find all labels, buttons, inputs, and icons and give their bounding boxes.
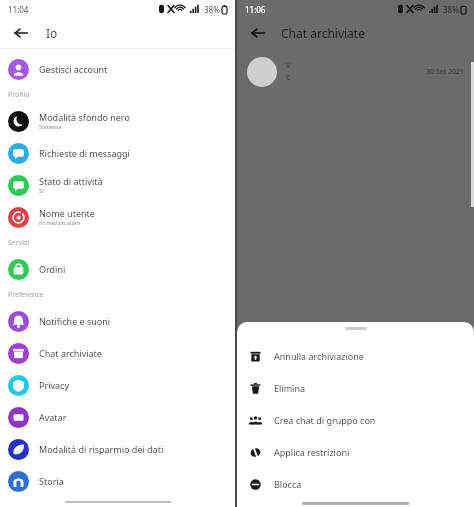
button[interactable]: Elimina — [237, 372, 474, 404]
staticText: 38% — [204, 4, 220, 15]
staticText: Io — [46, 25, 58, 41]
staticText: Stato di attività — [39, 175, 103, 187]
button[interactable]: Ordini — [0, 253, 235, 285]
staticText: Modalità di risparmio dei dati — [39, 443, 164, 455]
button[interactable]: Gestisci account — [0, 53, 235, 85]
staticText: Chat archiviate — [39, 347, 102, 359]
staticText: 30 Set 2021 — [426, 67, 464, 77]
staticText: Modalità sfondo nero — [39, 111, 130, 123]
staticText: V — [286, 61, 291, 71]
button[interactable]: Annulla archiviazione — [237, 340, 474, 372]
button[interactable]: Modalità di risparmio dei dati — [0, 433, 235, 465]
button[interactable]: Avatar — [0, 401, 235, 433]
button[interactable]: Indietro — [247, 22, 269, 44]
staticText: Ordini — [39, 263, 66, 275]
button[interactable]: Richieste di messaggi — [0, 137, 235, 169]
button[interactable]: Chat archiviate — [0, 337, 235, 369]
staticText: Sistema — [39, 123, 62, 131]
button[interactable]: Privacy — [0, 369, 235, 401]
staticText: Nome utente — [39, 207, 95, 219]
staticText: Blocca — [274, 478, 302, 490]
staticText: 11:04 — [8, 4, 29, 15]
button[interactable]: Crea chat di gruppo con — [237, 404, 474, 436]
staticText: Applica restrizioni — [274, 446, 350, 458]
staticText: Notifiche e suoni — [39, 315, 111, 327]
staticText: Privacy — [39, 379, 70, 391]
staticText: Servizi — [8, 238, 30, 248]
staticText: Gestisci account — [39, 63, 108, 75]
staticText: Sì — [39, 187, 44, 195]
staticText: Elimina — [274, 382, 305, 394]
staticText: 11:06 — [245, 4, 266, 15]
staticText: Crea chat di gruppo con — [274, 414, 376, 426]
button[interactable]: Storia — [0, 465, 235, 497]
staticText: Richieste di messaggi — [39, 147, 130, 159]
staticText: Storia — [39, 475, 64, 487]
button[interactable]: Modalità sfondo nero — [0, 105, 235, 137]
button[interactable]: Notifiche e suoni — [0, 305, 235, 337]
staticText: Preferenze — [8, 290, 44, 300]
staticText: Chat archiviate — [281, 25, 365, 41]
button[interactable]: Stato di attività — [0, 169, 235, 201]
button[interactable]: Nome utente — [0, 201, 235, 233]
button[interactable]: Blocca — [237, 468, 474, 500]
button[interactable]: Indietro — [10, 22, 32, 44]
staticText: C — [286, 73, 291, 83]
button[interactable]: V — [237, 52, 474, 92]
staticText: 38% — [443, 4, 459, 15]
staticText: Profilo — [8, 90, 30, 100]
staticText: Annulla archiviazione — [274, 350, 364, 362]
staticText: Avatar — [39, 411, 67, 423]
button[interactable]: Applica restrizioni — [237, 436, 474, 468]
staticText: m.me/zio.slam — [39, 219, 81, 227]
